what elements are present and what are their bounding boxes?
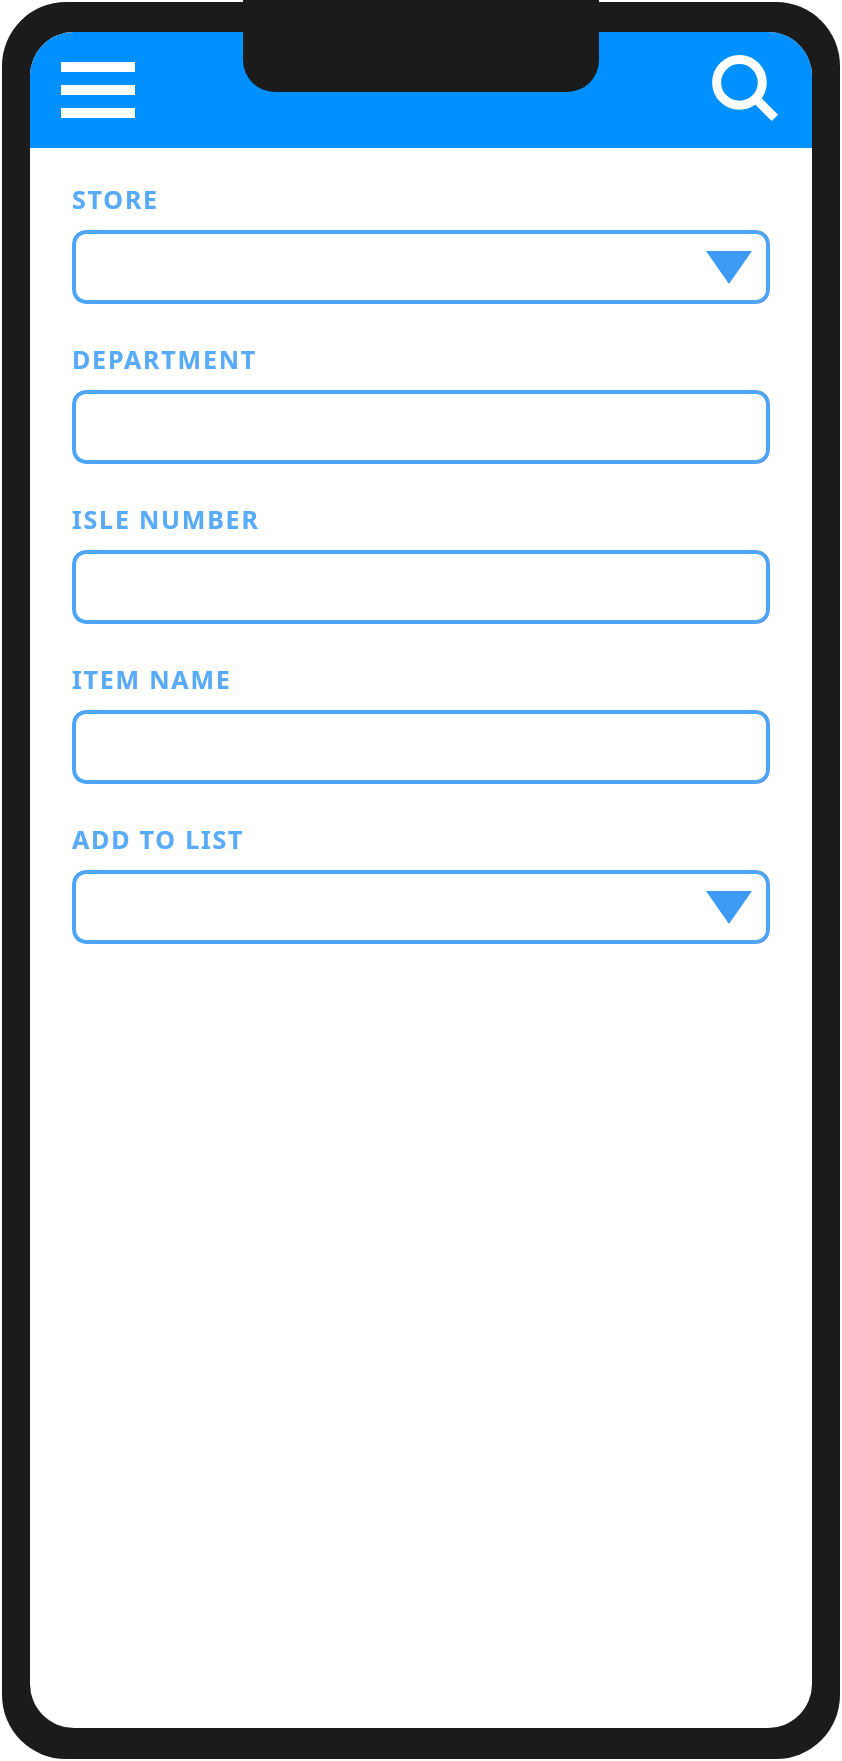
button[interactable]: Search [692, 38, 796, 142]
other: Expand STORE options [706, 251, 752, 284]
button[interactable]: Open navigation menu [46, 38, 150, 142]
button[interactable] [72, 550, 770, 624]
other: Expand ADD TO LIST options [706, 891, 752, 924]
staticText: ISLE NUMBER [72, 502, 260, 536]
button[interactable] [72, 710, 770, 784]
staticText: ITEM NAME [72, 662, 232, 696]
button[interactable]: Expand STORE options [72, 230, 770, 304]
staticText: DEPARTMENT [72, 342, 258, 376]
staticText: STORE [72, 182, 159, 216]
staticText: ADD TO LIST [72, 822, 245, 856]
button[interactable]: Expand ADD TO LIST options [72, 870, 770, 944]
button[interactable] [72, 390, 770, 464]
